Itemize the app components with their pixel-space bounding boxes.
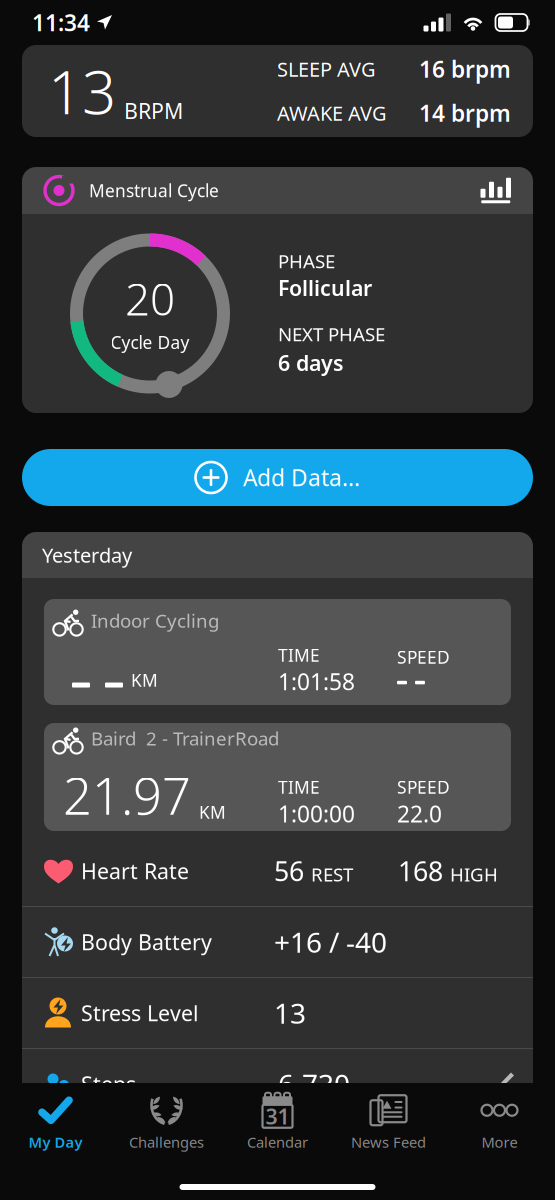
staticText: KM: [131, 668, 158, 691]
staticText: +16 / -40: [274, 923, 387, 961]
button[interactable]: Add Data...: [22, 449, 533, 506]
staticText: Yesterday: [42, 542, 132, 568]
button[interactable]: News Feed: [333, 1089, 444, 1159]
button[interactable]: Heart Rate: [22, 836, 533, 907]
button[interactable]: More: [444, 1089, 555, 1159]
staticText: News Feed: [351, 1132, 426, 1152]
staticText: 14 brpm: [419, 98, 511, 128]
staticText: SPEED: [397, 775, 450, 798]
staticText: My Day: [28, 1132, 82, 1152]
staticText: Indoor Cycling: [91, 608, 219, 633]
button[interactable]: Challenges: [111, 1089, 222, 1159]
button[interactable]: Baird 2 - TrainerRoad: [44, 723, 511, 831]
staticText: NEXT PHASE: [278, 321, 385, 346]
staticText: 16 brpm: [419, 54, 511, 84]
staticText: Heart Rate: [81, 857, 189, 885]
staticText: Challenges: [129, 1132, 204, 1152]
staticText: Steps: [81, 1070, 136, 1098]
staticText: TIME: [278, 775, 320, 798]
staticText: 1:00:00: [278, 798, 355, 829]
button[interactable]: Indoor Cycling: [44, 599, 511, 705]
button[interactable]: Stress Level: [22, 978, 533, 1049]
staticText: 22.0: [397, 798, 442, 829]
staticText: SLEEP AVG: [277, 56, 376, 82]
button[interactable]: Steps: [22, 1049, 533, 1119]
staticText: Calendar: [247, 1132, 308, 1152]
staticText: HIGH: [450, 862, 498, 887]
staticText: PHASE: [278, 248, 335, 273]
staticText: 56: [274, 853, 304, 889]
staticText: KM: [199, 801, 226, 824]
staticText: Stress Level: [81, 999, 199, 1027]
staticText: 31: [265, 1102, 289, 1130]
staticText: Cycle Day: [110, 331, 189, 354]
staticText: Body Battery: [81, 928, 212, 956]
staticText: 20: [125, 269, 175, 328]
staticText: 13: [274, 994, 306, 1032]
staticText: Follicular: [278, 273, 372, 302]
staticText: 168: [398, 853, 443, 889]
button[interactable]: My Day: [0, 1089, 111, 1159]
staticText: SPEED: [397, 645, 450, 668]
staticText: More: [481, 1132, 517, 1152]
staticText: Add Data...: [243, 462, 360, 492]
button[interactable]: Menstrual Cycle: [22, 167, 533, 214]
button[interactable]: 13: [22, 45, 533, 137]
button[interactable]: 31: [222, 1089, 333, 1159]
staticText: REST: [311, 862, 353, 887]
staticText: 1:01:58: [278, 666, 355, 697]
staticText: AWAKE AVG: [277, 100, 387, 126]
staticText: 6 days: [278, 348, 344, 377]
staticText: 6,730: [278, 1065, 350, 1103]
staticText: TIME: [278, 643, 320, 666]
staticText: Baird 2 - TrainerRoad: [91, 726, 279, 751]
button[interactable]: Body Battery: [22, 907, 533, 978]
staticText: 11:34: [32, 7, 90, 37]
staticText: 13: [48, 51, 116, 131]
staticText: Menstrual Cycle: [89, 179, 219, 202]
button[interactable]: 20: [22, 214, 533, 413]
staticText: BRPM: [124, 96, 183, 125]
staticText: 21.97: [63, 761, 191, 829]
